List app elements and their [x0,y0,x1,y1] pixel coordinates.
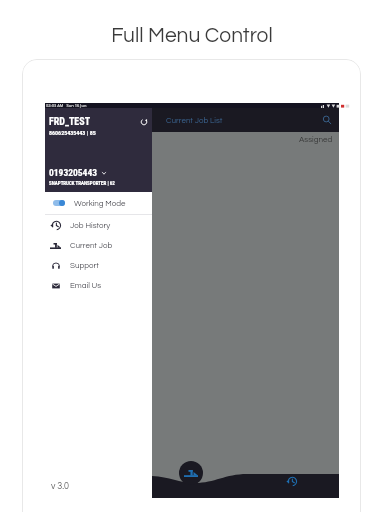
staticText: Full Menu Control [0,25,384,47]
staticText: SNAPTRUCK TRANSPORTER | 62 [49,180,115,186]
staticText: Current Job List [166,116,223,124]
button[interactable]: Search [320,113,334,127]
button[interactable]: Job history [284,474,299,489]
staticText: v 3.0 [51,482,70,491]
staticText: Current Job [70,241,113,249]
button[interactable]: Refresh [140,118,148,126]
staticText: 0193205443 [49,167,98,178]
staticText: 860625435443 | 85 [49,129,96,136]
staticText: Assigned [299,135,333,143]
button[interactable]: Job History [45,215,152,235]
button[interactable]: Current job [179,461,203,485]
button[interactable]: Email Us [45,275,152,295]
button[interactable]: Switch vehicle [101,170,107,176]
button[interactable]: Support [45,255,152,275]
button[interactable]: Current Job [45,235,152,255]
staticText: Job History [70,221,111,229]
staticText: 02:03 AM Sun 16 Jun [46,103,87,108]
staticText: Support [70,261,99,269]
staticText: Working Mode [74,199,126,207]
staticText: FRD_TEST [49,116,91,128]
button[interactable]: Working Mode [45,192,152,214]
staticText: Email Us [70,281,102,289]
